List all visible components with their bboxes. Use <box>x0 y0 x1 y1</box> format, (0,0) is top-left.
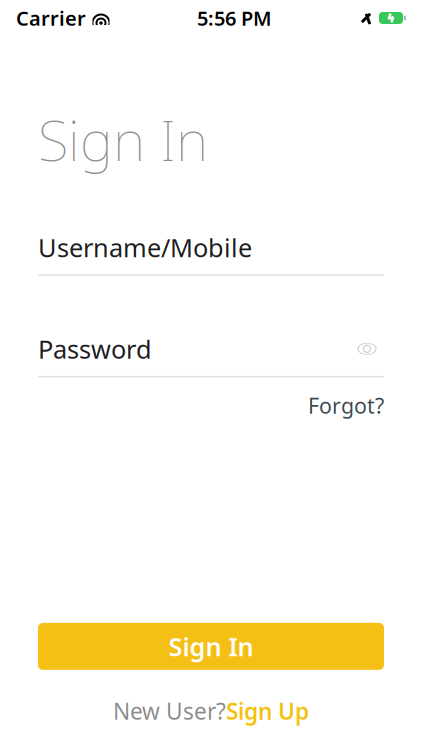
staticText: Sign Up <box>226 696 309 726</box>
staticText: Forgot? <box>308 391 384 420</box>
staticText: Sign In <box>168 630 253 663</box>
staticText: Sign In <box>38 102 208 176</box>
button[interactable]: New User? <box>101 690 321 732</box>
button[interactable]: Sign In <box>38 623 384 670</box>
staticText: 5:56 PM <box>197 5 272 31</box>
staticText: New User? <box>113 696 226 726</box>
button[interactable]: Forgot? <box>298 387 384 424</box>
staticText: Password <box>38 332 152 366</box>
button[interactable]: Show password <box>350 336 384 362</box>
staticText: Carrier <box>16 5 86 31</box>
staticText: Username/Mobile <box>38 230 252 264</box>
